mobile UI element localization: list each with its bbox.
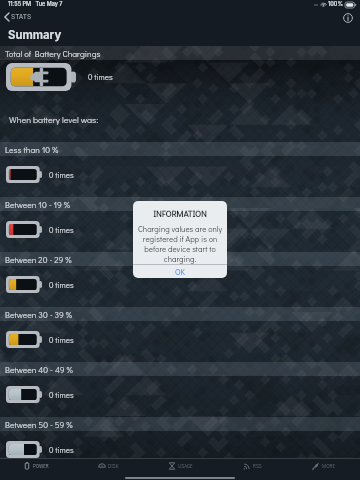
staticText: Between 30 - 39 %	[5, 309, 73, 320]
staticText: Between 20 - 29 %	[5, 254, 72, 265]
button[interactable]: STATS	[0, 12, 40, 22]
staticText: 0 times	[49, 390, 74, 400]
staticText: 0 times	[49, 335, 74, 345]
staticText: DISK	[108, 463, 119, 470]
staticText: 0 times	[49, 170, 74, 180]
staticText: STATS	[11, 13, 32, 21]
staticText: 0 times	[49, 225, 74, 235]
staticText: 11:55 PM Tue May 7	[8, 1, 63, 8]
staticText: USAGE	[178, 463, 193, 470]
button[interactable]: OK	[133, 265, 227, 278]
staticText: Between 50 - 59 %	[5, 419, 73, 430]
staticText: Between 40 - 49 %	[5, 364, 73, 375]
staticText: INFORMATION	[133, 208, 227, 219]
button[interactable]: USAGE	[144, 459, 216, 473]
staticText: Total of Battery Chargings	[5, 48, 101, 59]
staticText: Less than 10 %	[5, 144, 59, 155]
button[interactable]: RSS	[216, 459, 288, 473]
staticText: POWER	[33, 463, 49, 470]
staticText: 0 times	[49, 445, 74, 455]
button[interactable]: POWER	[0, 459, 72, 473]
staticText: Summary	[8, 28, 62, 42]
staticText: MORE	[322, 463, 336, 470]
staticText: OK	[175, 267, 185, 277]
staticText: 0 times	[49, 280, 74, 290]
staticText: 100%	[328, 1, 343, 8]
button[interactable]: MORE	[288, 459, 360, 473]
staticText: Between 10 - 19 %	[5, 199, 71, 210]
staticText: When battery level was:	[9, 114, 99, 126]
button[interactable]: Information	[340, 10, 355, 25]
staticText: RSS	[253, 463, 262, 470]
staticText: Charging values are only registered if A…	[138, 224, 222, 264]
button[interactable]: DISK	[72, 459, 144, 473]
staticText: 0 times	[88, 72, 113, 82]
